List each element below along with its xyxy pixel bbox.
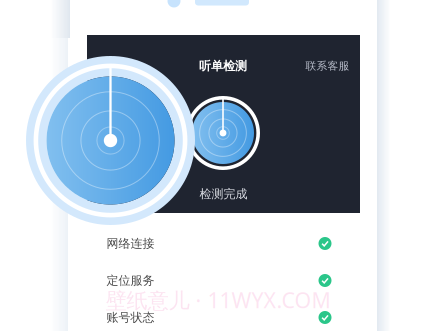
button[interactable]: 账号状态 [106, 299, 331, 331]
staticText: 检测完成 [199, 187, 247, 201]
staticText: 网络连接 [106, 236, 154, 251]
staticText: 定位服务 [106, 273, 154, 288]
staticText: 联系客服 [305, 59, 349, 72]
staticText: 壁纸意儿 · 11WYX.COM [105, 286, 330, 314]
button[interactable]: 定位服务 [106, 262, 331, 298]
staticText: 听单检测 [199, 59, 247, 73]
staticText: 账号状态 [106, 310, 154, 325]
button[interactable]: 网络连接 [106, 225, 331, 261]
button[interactable]: 联系客服 [305, 59, 349, 72]
